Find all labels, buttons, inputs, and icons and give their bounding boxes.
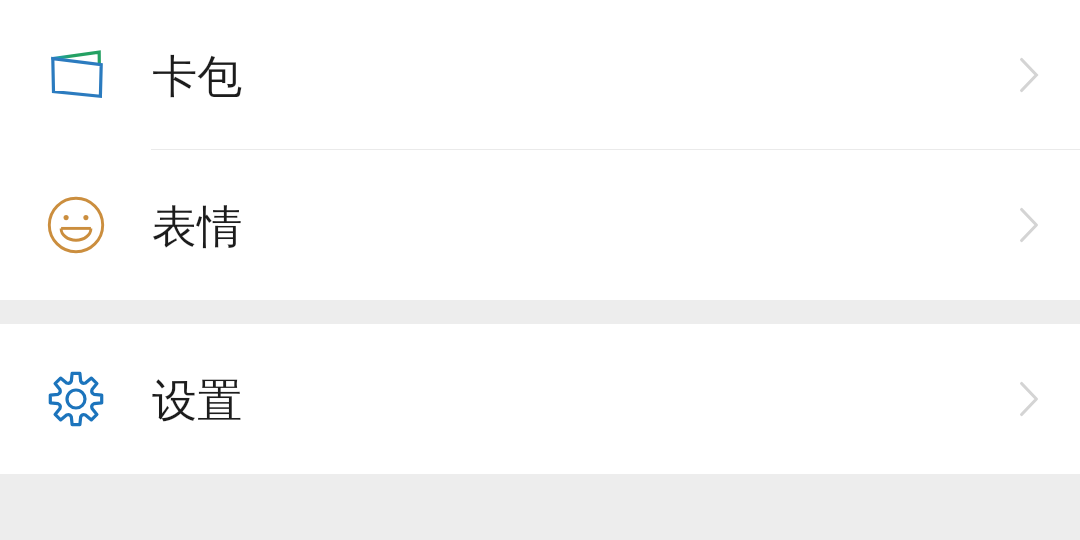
button[interactable]: Settings <box>0 324 1080 474</box>
staticText: 表情 <box>152 199 242 256</box>
staticText: 卡包 <box>152 49 242 106</box>
button[interactable]: Stickers <box>0 150 1080 300</box>
staticText: 设置 <box>152 373 242 430</box>
button[interactable]: Card package <box>0 0 1080 150</box>
